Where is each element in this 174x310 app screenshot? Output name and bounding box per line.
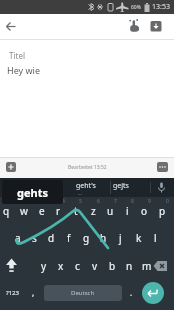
staticText: l (154, 231, 157, 245)
staticText: t (74, 204, 78, 218)
button[interactable]: ?123 (0, 286, 24, 300)
staticText: 2 (27, 198, 30, 205)
button[interactable]: . (125, 285, 137, 299)
button[interactable]: d (43, 228, 60, 248)
button[interactable]: n (121, 256, 138, 276)
button[interactable]: u (102, 201, 119, 221)
staticText: geht's (76, 181, 96, 191)
button[interactable]: geht's (67, 179, 105, 193)
staticText: i (126, 204, 129, 218)
button[interactable]: f (60, 228, 77, 248)
staticText: 8 (131, 198, 134, 205)
button[interactable]: q (0, 201, 15, 221)
button[interactable]: h (95, 228, 112, 248)
button[interactable]: e (33, 201, 50, 221)
button[interactable]: y (35, 256, 52, 276)
staticText: p (159, 204, 166, 218)
staticText: ··· (78, 191, 83, 198)
button[interactable]: j (112, 228, 129, 248)
staticText: u (107, 204, 114, 218)
button[interactable] (148, 18, 164, 34)
button[interactable] (126, 18, 142, 34)
staticText: 7 (114, 198, 117, 205)
button[interactable] (2, 18, 19, 35)
staticText: b (109, 259, 116, 273)
staticText: 6 (97, 198, 100, 205)
button[interactable] (152, 259, 170, 273)
button[interactable]: a (9, 228, 26, 248)
staticText: n (126, 259, 133, 273)
button[interactable]: t (67, 201, 84, 221)
button[interactable]: c (69, 256, 86, 276)
staticText: Titel (9, 50, 25, 61)
staticText: j (119, 231, 122, 245)
staticText: k (136, 231, 142, 245)
staticText: m (142, 259, 152, 273)
button[interactable]: i (119, 201, 136, 221)
staticText: 5 (79, 198, 82, 205)
button[interactable]: gejts (104, 179, 138, 193)
staticText: a (15, 231, 21, 245)
button[interactable] (155, 181, 168, 194)
staticText: s (32, 231, 37, 245)
staticText: v (92, 259, 98, 273)
button[interactable] (3, 257, 20, 275)
staticText: 3 (45, 198, 48, 205)
staticText: o (141, 204, 148, 218)
button[interactable]: o (136, 201, 153, 221)
staticText: x (58, 259, 64, 273)
staticText: h (100, 231, 107, 245)
staticText: 0 (166, 198, 169, 205)
button[interactable] (6, 162, 16, 172)
button[interactable]: k (130, 228, 147, 248)
button[interactable]: p (154, 201, 171, 221)
staticText: f (67, 231, 71, 245)
button[interactable]: Deutsch (44, 285, 122, 301)
button[interactable]: b (104, 256, 121, 276)
button[interactable] (142, 282, 164, 304)
button[interactable]: Hey wie (7, 64, 87, 76)
button[interactable]: g (78, 228, 95, 248)
staticText: Hey wie (7, 64, 40, 76)
button[interactable] (157, 162, 168, 172)
staticText: r (56, 204, 61, 218)
staticText: e (39, 204, 45, 218)
staticText: 4 (62, 198, 65, 205)
button[interactable]: r (50, 201, 67, 221)
staticText: w (20, 204, 28, 218)
button[interactable]: x (52, 256, 69, 276)
staticText: 1 (10, 198, 13, 205)
staticText: c (75, 259, 80, 273)
staticText: gejts (113, 181, 129, 191)
button[interactable]: Titel (9, 49, 89, 61)
staticText: Bearbeitet 13:52 (68, 164, 107, 171)
button[interactable]: z (85, 201, 102, 221)
staticText: Deutsch (71, 289, 95, 297)
button[interactable]: w (15, 201, 32, 221)
staticText: g (83, 231, 90, 245)
staticText: 9 (148, 198, 151, 205)
staticText: , (32, 287, 35, 298)
button[interactable]: s (26, 228, 43, 248)
staticText: y (41, 259, 47, 273)
button[interactable]: v (86, 256, 103, 276)
staticText: z (91, 204, 96, 218)
staticText: . (130, 287, 133, 298)
staticText: q (3, 204, 10, 218)
staticText: 13:53 (152, 2, 170, 12)
button[interactable]: m (138, 256, 155, 276)
staticText: ?123 (6, 289, 19, 297)
staticText: d (48, 231, 55, 245)
button[interactable]: , (27, 285, 39, 299)
staticText: gehts (17, 185, 48, 200)
button[interactable]: l (147, 228, 164, 248)
staticText: 60% (131, 4, 141, 11)
